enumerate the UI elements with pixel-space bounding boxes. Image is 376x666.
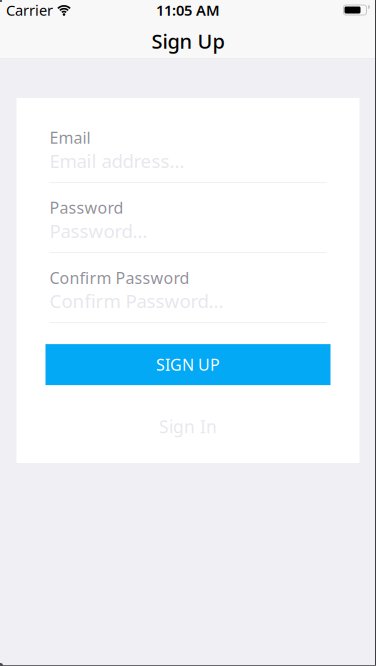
staticText: Sign In [159, 415, 217, 438]
staticText: Email address... [49, 148, 184, 173]
staticText: Password [49, 197, 123, 218]
staticText: SIGN UP [156, 354, 220, 375]
button[interactable]: SIGN UP [45, 344, 330, 385]
staticText: Confirm Password... [49, 288, 223, 313]
staticText: Password... [49, 218, 147, 243]
staticText: Email [49, 127, 90, 148]
button[interactable]: Confirm Password... [49, 288, 326, 313]
staticText: 11:05 AM [156, 0, 220, 20]
button[interactable]: Sign In [159, 415, 217, 438]
staticText: Confirm Password [49, 267, 189, 288]
button[interactable]: Email address... [49, 148, 326, 173]
button[interactable]: Password... [49, 218, 326, 243]
staticText: Sign Up [151, 28, 224, 54]
staticText: Carrier [6, 0, 53, 20]
